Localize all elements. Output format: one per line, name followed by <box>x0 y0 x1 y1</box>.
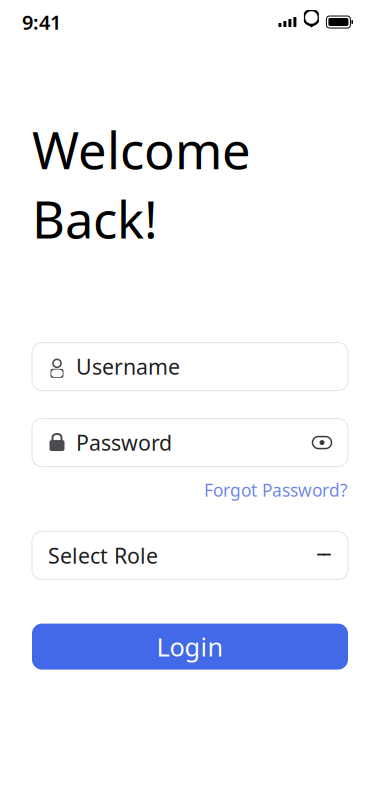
staticText: Password <box>76 428 172 457</box>
button[interactable]: Password <box>32 419 348 467</box>
staticText: Welcome <box>32 116 251 183</box>
staticText: Select Role <box>48 541 158 570</box>
button[interactable]: Login <box>32 624 348 670</box>
staticText: Back! <box>32 185 158 253</box>
button[interactable]: Select Role <box>32 532 348 580</box>
button[interactable]: Forgot Password? <box>204 475 348 506</box>
staticText: Login <box>156 630 223 663</box>
button[interactable]: Username <box>32 343 348 391</box>
staticText: 9:41 <box>22 9 61 35</box>
staticText: Forgot Password? <box>204 479 348 502</box>
staticText: Username <box>76 352 180 381</box>
